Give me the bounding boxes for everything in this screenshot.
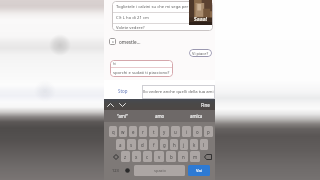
- staticText: Saaa!: [194, 16, 208, 23]
- staticText: i: [186, 129, 188, 135]
- button[interactable]: c: [143, 151, 152, 162]
- button[interactable]: spazio: [134, 165, 185, 176]
- staticText: x: [135, 154, 138, 160]
- button[interactable]: i: [182, 126, 191, 137]
- staticText: v: [158, 154, 161, 160]
- staticText: amica: [190, 113, 203, 119]
- staticText: n: [182, 154, 185, 160]
- button[interactable]: Shift: [110, 151, 122, 162]
- button[interactable]: Fine: [201, 99, 210, 110]
- button[interactable]: g: [160, 139, 168, 150]
- staticText: hi: [113, 61, 116, 66]
- button[interactable]: Next field: [116, 99, 128, 110]
- button[interactable]: a: [116, 139, 125, 150]
- staticText: Fine: [201, 102, 210, 108]
- staticText: u: [174, 129, 177, 135]
- staticText: q: [112, 129, 115, 135]
- staticText: r: [142, 129, 144, 135]
- button[interactable]: p: [204, 126, 213, 137]
- button[interactable]: Numbers: [109, 165, 122, 176]
- button[interactable]: z: [121, 151, 130, 162]
- button[interactable]: Stop: [104, 83, 142, 99]
- staticText: C'è L ho di 21 cm: [116, 15, 149, 21]
- button[interactable]: d: [138, 139, 147, 150]
- staticText: Vai: [196, 168, 202, 174]
- staticText: omestle...: [119, 39, 141, 45]
- staticText: a: [119, 142, 122, 148]
- staticText: Toglietele i calzini su che mi sega per: [116, 4, 189, 10]
- button[interactable]: amica: [178, 110, 215, 122]
- button[interactable]: t: [149, 126, 158, 137]
- staticText: c: [146, 154, 149, 160]
- staticText: w: [121, 129, 125, 135]
- staticText: Vi piace?: [192, 51, 209, 56]
- staticText: e: [132, 129, 135, 135]
- button[interactable]: r: [139, 126, 147, 137]
- staticText: 123: [112, 168, 119, 173]
- button[interactable]: y: [160, 126, 169, 137]
- button[interactable]: Backspace: [202, 151, 214, 162]
- button[interactable]: o: [193, 126, 202, 137]
- button[interactable]: Vai: [188, 165, 210, 176]
- button[interactable]: Previous field: [104, 99, 116, 110]
- staticText: sporchi e sudati ti piacciono?: [113, 70, 170, 76]
- staticText: Stop: [118, 88, 128, 94]
- button[interactable]: m: [190, 151, 200, 162]
- button[interactable]: Vi piace?: [189, 49, 212, 57]
- button[interactable]: n: [178, 151, 188, 162]
- button[interactable]: k: [190, 139, 198, 150]
- button[interactable]: h: [170, 139, 178, 150]
- staticText: f: [153, 142, 155, 148]
- button[interactable]: w: [119, 126, 127, 137]
- staticText: b: [170, 154, 173, 160]
- button[interactable]: x: [132, 151, 141, 162]
- staticText: m: [193, 154, 198, 160]
- staticText: “ami”: [117, 113, 128, 119]
- button[interactable]: q: [109, 126, 117, 137]
- button[interactable]: l: [200, 139, 208, 150]
- button[interactable]: s: [127, 139, 136, 150]
- button[interactable]: u: [171, 126, 180, 137]
- button[interactable]: amo: [141, 110, 178, 122]
- staticText: p: [207, 129, 210, 135]
- staticText: g: [163, 142, 166, 148]
- staticText: k: [193, 142, 196, 148]
- staticText: spazio: [154, 168, 166, 173]
- staticText: llo vedere anche quelli della tua ami: [143, 89, 214, 95]
- button[interactable]: j: [180, 139, 188, 150]
- button[interactable]: “ami”: [104, 110, 141, 122]
- staticText: o: [196, 129, 199, 135]
- staticText: Volete vedere?: [116, 25, 145, 31]
- button[interactable]: e: [129, 126, 137, 137]
- staticText: h: [173, 142, 176, 148]
- staticText: y: [163, 129, 166, 135]
- staticText: amo: [155, 113, 165, 119]
- staticText: l: [203, 142, 205, 148]
- staticText: j: [183, 142, 185, 148]
- staticText: t: [153, 129, 155, 135]
- button[interactable]: Voice input: [122, 165, 133, 176]
- staticText: s: [130, 142, 133, 148]
- button[interactable]: b: [166, 151, 176, 162]
- staticText: z: [124, 154, 127, 160]
- button[interactable]: v: [154, 151, 164, 162]
- button[interactable]: f: [149, 139, 158, 150]
- staticText: d: [141, 142, 144, 148]
- staticText: a: [112, 40, 114, 44]
